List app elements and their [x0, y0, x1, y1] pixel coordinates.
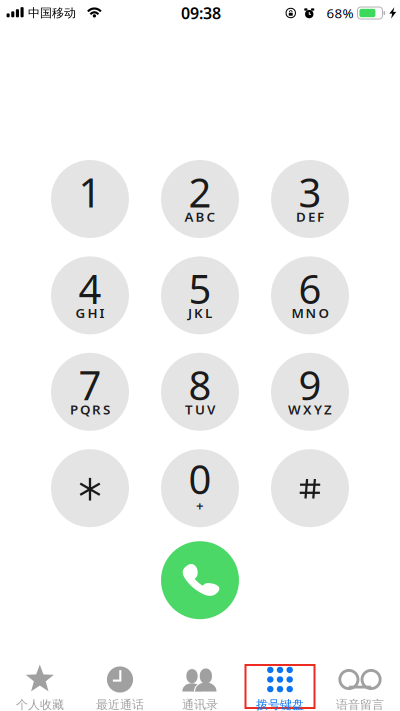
button[interactable]: 语音留言	[320, 664, 400, 711]
button[interactable]: 7	[51, 353, 129, 431]
button[interactable]: Star	[51, 449, 129, 527]
button[interactable]: 4	[51, 256, 129, 334]
staticText: 09:38	[181, 2, 221, 24]
button[interactable]: 8	[161, 353, 239, 431]
staticText: 9	[298, 358, 321, 411]
staticText: W X Y Z	[288, 400, 332, 418]
staticText: 拨号键盘	[256, 697, 304, 711]
button[interactable]: 5	[161, 256, 239, 334]
staticText: J K L	[188, 304, 212, 322]
staticText: T U V	[185, 400, 215, 418]
button[interactable]: 3	[271, 160, 349, 238]
staticText: 中国移动	[28, 6, 76, 20]
staticText: 语音留言	[336, 697, 384, 711]
button[interactable]: 2	[161, 160, 239, 238]
staticText: A B C	[184, 208, 215, 225]
button[interactable]: 最近通话	[80, 664, 160, 711]
staticText: 5	[188, 262, 211, 315]
button[interactable]: 6	[271, 256, 349, 334]
button[interactable]: 9	[271, 353, 349, 431]
staticText: P Q R S	[70, 400, 110, 418]
staticText: +	[196, 496, 204, 514]
staticText: 0	[188, 452, 211, 505]
staticText: 68%	[326, 4, 353, 22]
staticText: 3	[298, 165, 321, 218]
button[interactable]: 1	[51, 160, 129, 238]
staticText: 2	[188, 165, 211, 218]
button[interactable]: Call	[161, 541, 239, 619]
button[interactable]: Pound	[271, 449, 349, 527]
staticText: 通讯录	[182, 697, 218, 711]
button[interactable]: 拨号键盘	[240, 664, 320, 711]
staticText: 最近通话	[96, 697, 144, 711]
staticText: 个人收藏	[16, 697, 64, 711]
button[interactable]: 通讯录	[160, 664, 240, 711]
staticText: 8	[188, 358, 211, 411]
button[interactable]: 0	[161, 449, 239, 527]
staticText: G H I	[75, 304, 104, 322]
staticText: 6	[298, 262, 321, 315]
button[interactable]: 个人收藏	[0, 664, 80, 711]
staticText: 4	[78, 262, 101, 315]
staticText: M N O	[291, 304, 328, 322]
staticText: D E F	[296, 208, 324, 225]
staticText: 1	[78, 165, 101, 218]
staticText: 7	[78, 358, 101, 411]
